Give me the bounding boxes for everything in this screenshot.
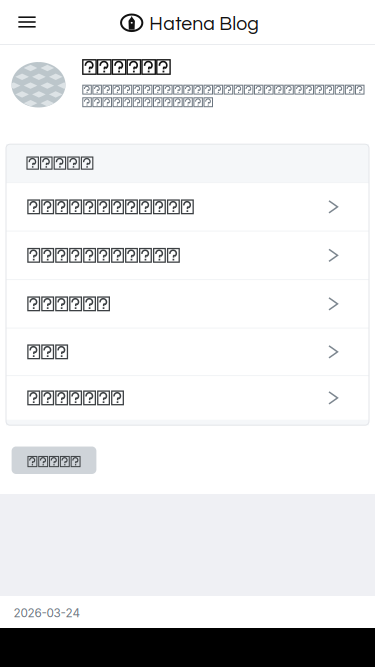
staticText: Hatena Blog [149, 14, 259, 34]
button[interactable]: アカウント設定 [6, 376, 369, 420]
button[interactable]: ブログメンバーとして参加 [6, 183, 369, 231]
button[interactable]: メニュー [9, 4, 45, 40]
button[interactable]: アクセス解析を表示する [6, 232, 369, 279]
staticText: 2026-03-24 [13, 606, 80, 620]
button[interactable]: ブログ [6, 329, 369, 375]
button[interactable]: デザイン設定 [6, 280, 369, 328]
button[interactable]: ログアウト [12, 446, 96, 474]
